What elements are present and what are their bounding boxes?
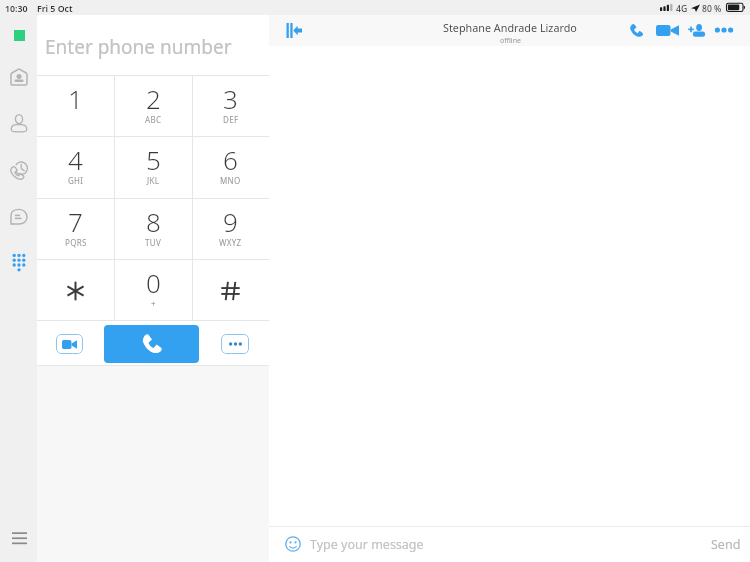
button[interactable] [192, 260, 269, 321]
button[interactable]: More options [713, 18, 735, 42]
staticText: 4G [676, 3, 688, 15]
button[interactable]: Call [104, 325, 199, 363]
button[interactable]: Dialpad [4, 248, 34, 278]
button[interactable]: Contacts [4, 62, 34, 92]
button[interactable]: 4 [37, 137, 114, 198]
staticText: Stephane Andrade Lizardo [443, 20, 577, 35]
button[interactable]: 7 [37, 199, 114, 260]
button[interactable]: 6 [192, 137, 269, 198]
button[interactable]: Send [707, 533, 745, 555]
button[interactable]: Recents [4, 155, 34, 185]
button[interactable] [37, 260, 114, 321]
staticText: Send [711, 536, 741, 553]
staticText: TUV [145, 237, 161, 248]
staticText: 7 [68, 204, 83, 239]
button[interactable]: People [4, 108, 34, 138]
staticText: 9 [223, 204, 238, 239]
button[interactable]: Audio call [626, 18, 646, 42]
staticText: 80 % [702, 3, 722, 15]
staticText: 6 [223, 142, 238, 177]
staticText: + [151, 298, 156, 309]
button[interactable]: 8 [114, 199, 192, 260]
staticText: Enter phone number [45, 34, 232, 60]
staticText: GHI [68, 175, 84, 186]
button[interactable]: 2 [114, 76, 192, 137]
button[interactable]: 5 [114, 137, 192, 198]
staticText: 2 [146, 81, 161, 116]
button[interactable]: Profile [4, 20, 34, 50]
staticText: JKL [147, 175, 160, 186]
staticText: ABC [145, 114, 162, 125]
staticText: 1 [68, 81, 83, 116]
button[interactable]: More options [221, 334, 249, 354]
button[interactable]: Video call [654, 18, 680, 42]
button[interactable]: Emoji [280, 531, 306, 557]
staticText: Fri 5 Oct [37, 3, 73, 15]
button[interactable]: 1 [37, 76, 114, 137]
button[interactable]: Chats [4, 202, 34, 232]
button[interactable]: 0 [114, 260, 192, 321]
button[interactable]: 3 [192, 76, 269, 137]
staticText: 4 [68, 142, 83, 177]
button[interactable]: Video call [56, 334, 83, 354]
staticText: 10:30 [5, 3, 28, 15]
staticText: 8 [146, 204, 161, 239]
staticText: offline [500, 36, 521, 46]
button[interactable]: Menu [4, 522, 34, 552]
staticText: 0 [146, 265, 161, 300]
staticText: PQRS [65, 237, 87, 248]
staticText: 3 [223, 81, 238, 116]
button[interactable]: 9 [192, 199, 269, 260]
button[interactable]: Add people [685, 18, 708, 42]
staticText: MNO [220, 175, 241, 186]
staticText: Type your message [310, 536, 424, 553]
staticText: 5 [146, 142, 161, 177]
staticText: DEF [223, 114, 239, 125]
button[interactable]: Collapse panel [285, 19, 305, 42]
staticText: WXYZ [219, 237, 242, 248]
